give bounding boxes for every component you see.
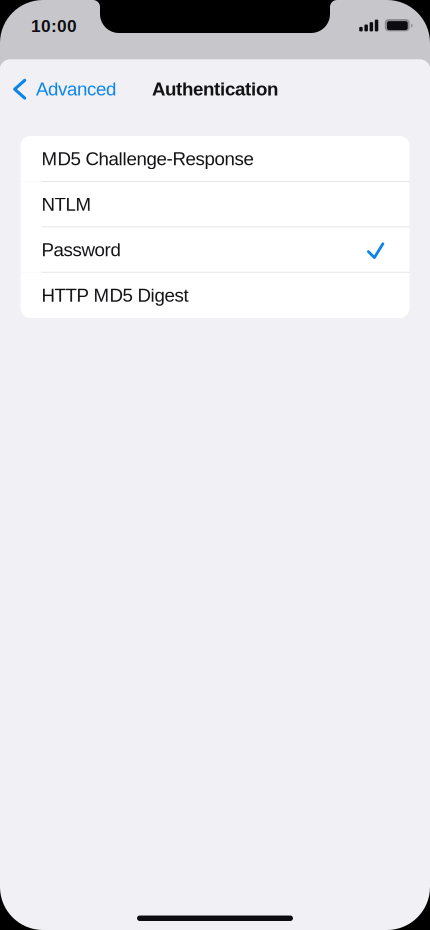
button[interactable]: Password: [20, 227, 409, 272]
button[interactable]: NTLM: [20, 181, 409, 227]
button[interactable]: Advanced: [0, 72, 126, 106]
staticText: Advanced: [36, 79, 116, 99]
staticText: MD5 Challenge-Response: [41, 148, 253, 169]
staticText: HTTP MD5 Digest: [41, 285, 188, 306]
staticText: NTLM: [41, 194, 91, 215]
staticText: Authentication: [152, 79, 278, 99]
staticText: Password: [41, 239, 120, 260]
button[interactable]: Back to Advanced: [0, 0, 430, 930]
button[interactable]: HTTP MD5 Digest: [20, 272, 409, 318]
staticText: 10:00: [31, 16, 77, 36]
button[interactable]: MD5 Challenge-Response: [20, 136, 409, 181]
